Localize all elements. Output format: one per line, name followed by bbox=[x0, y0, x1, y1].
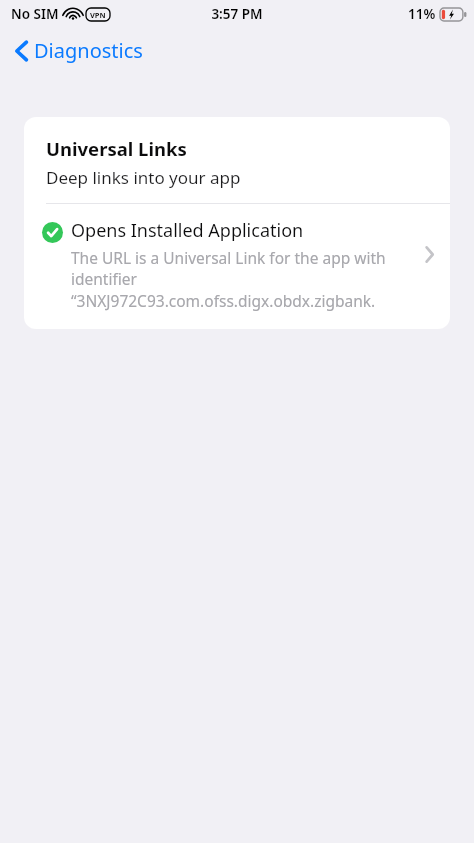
staticText: Diagnostics bbox=[34, 37, 143, 64]
staticText: 11% bbox=[408, 5, 436, 23]
other: Show details bbox=[425, 246, 434, 263]
button[interactable]: Opens Installed Application bbox=[24, 204, 450, 329]
staticText: Universal Links bbox=[46, 136, 187, 161]
staticText: Opens Installed Application bbox=[71, 218, 304, 243]
button[interactable]: Diagnostics bbox=[12, 34, 146, 67]
staticText: Deep links into your app bbox=[46, 166, 241, 189]
staticText: VPN bbox=[90, 10, 106, 20]
staticText: No SIM bbox=[11, 5, 59, 23]
staticText: 3:57 PM bbox=[211, 5, 263, 23]
staticText: The URL is a Universal Link for the app … bbox=[71, 247, 419, 312]
